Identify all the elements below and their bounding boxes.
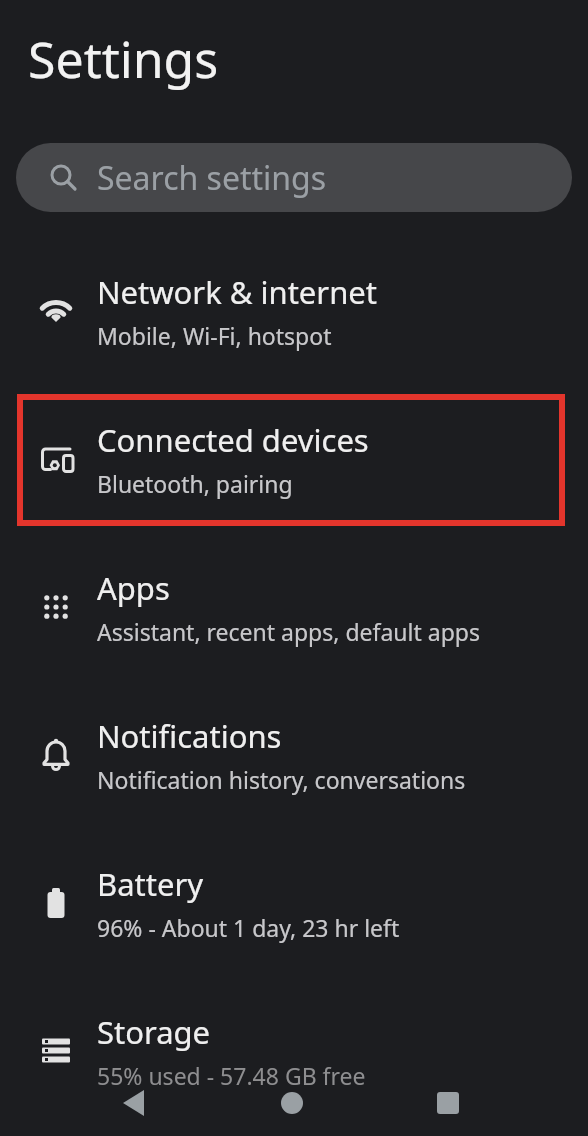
staticText: Notifications: [97, 715, 282, 757]
button[interactable]: Storage: [0, 977, 588, 1125]
button[interactable]: [268, 1080, 316, 1128]
button[interactable]: [110, 1080, 158, 1128]
staticText: Battery: [97, 863, 204, 905]
staticText: Network & internet: [97, 271, 377, 313]
staticText: Mobile, Wi-Fi, hotspot: [97, 320, 332, 351]
staticText: Search settings: [97, 156, 327, 200]
button[interactable]: Apps: [0, 533, 588, 681]
staticText: Notification history, conversations: [97, 764, 466, 795]
button[interactable]: Notifications: [0, 681, 588, 829]
staticText: 96% - About 1 day, 23 hr left: [97, 912, 400, 943]
button[interactable]: Connected devices: [0, 385, 588, 533]
button[interactable]: Network & internet: [0, 237, 588, 385]
button[interactable]: [424, 1080, 472, 1128]
staticText: Connected devices: [97, 419, 369, 461]
staticText: Bluetooth, pairing: [97, 468, 293, 499]
staticText: Assistant, recent apps, default apps: [97, 616, 480, 647]
staticText: Storage: [97, 1011, 211, 1053]
staticText: 55% used - 57.48 GB free: [97, 1060, 366, 1091]
button[interactable]: Battery: [0, 829, 588, 977]
button[interactable]: Search settings: [16, 143, 572, 212]
staticText: Settings: [28, 25, 219, 93]
staticText: Apps: [97, 567, 170, 609]
